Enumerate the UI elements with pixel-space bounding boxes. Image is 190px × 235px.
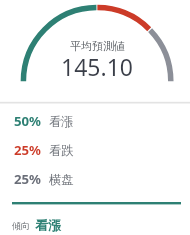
staticText: 看跌 <box>49 143 74 158</box>
staticText: 25% <box>14 170 41 188</box>
staticText: 25% <box>14 141 41 159</box>
button[interactable]: 傾向 <box>12 212 61 232</box>
staticText: 傾向 <box>12 220 30 231</box>
staticText: 50% <box>14 112 41 130</box>
staticText: 横盘 <box>49 172 74 187</box>
button[interactable]: 25% <box>0 137 190 166</box>
staticText: 看漲 <box>35 217 61 233</box>
staticText: 145.10 <box>61 51 133 82</box>
staticText: 平均預測値 <box>70 39 125 53</box>
button[interactable]: 50% <box>0 108 190 137</box>
staticText: 看漲 <box>49 114 74 129</box>
button[interactable]: 平均預測値 145.10 <box>0 6 190 100</box>
button[interactable]: 25% <box>0 166 190 195</box>
